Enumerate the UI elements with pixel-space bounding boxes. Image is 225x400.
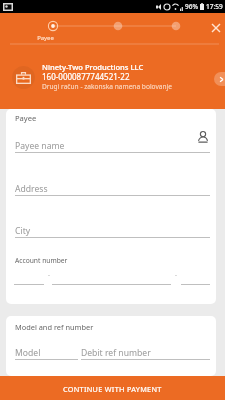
staticText: 17:59 [206,2,223,11]
button[interactable]: Choose contact [192,126,214,148]
staticText: Debit ref number [81,347,151,359]
staticText: Payee [15,113,37,123]
staticText: Payee [32,34,59,42]
staticText: 96% [185,2,198,11]
button[interactable]: Close [206,18,225,37]
staticText: Model and ref number [15,322,94,332]
staticText: Address [15,183,48,195]
staticText: 160-0000877744521-22 [42,71,130,82]
staticText: - [175,271,177,279]
button[interactable]: Next account [214,72,225,86]
staticText: - [48,271,50,279]
staticText: City [15,225,31,237]
staticText: CONTINUE WITH PAYMENT [63,384,162,394]
staticText: Model [15,347,41,359]
staticText: Ninety-Two Productions LLC [42,62,144,72]
staticText: Drugi račun - zakonska namena bolovanje [42,82,173,91]
staticText: Account number [15,256,68,265]
button[interactable]: CONTINUE WITH PAYMENT [0,376,225,400]
staticText: Payee name [15,140,65,152]
